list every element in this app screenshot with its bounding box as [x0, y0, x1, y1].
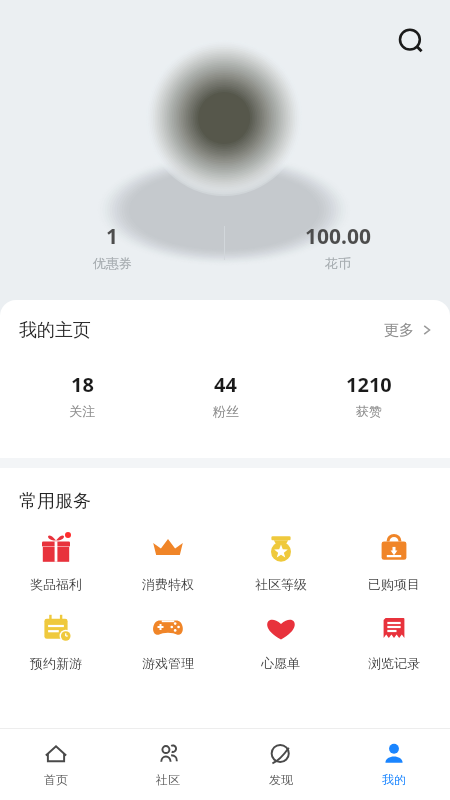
staticText: 社区等级: [255, 576, 307, 592]
button[interactable]: 预约新游: [0, 606, 112, 671]
staticText: 奖品福利: [30, 576, 82, 592]
staticText: 18: [71, 371, 94, 398]
staticText: 发现: [269, 772, 293, 787]
staticText: 首页: [44, 772, 68, 787]
staticText: 我的主页: [19, 319, 91, 342]
staticText: 浏览记录: [368, 655, 420, 671]
button[interactable]: 100.00: [225, 222, 450, 271]
staticText: 获赞: [356, 403, 382, 419]
staticText: 心愿单: [261, 655, 300, 671]
button[interactable]: 消费特权: [112, 527, 224, 592]
staticText: 粉丝: [213, 403, 239, 419]
staticText: 花币: [325, 255, 351, 271]
staticText: 常用服务: [19, 490, 91, 513]
staticText: 优惠券: [93, 255, 132, 271]
button[interactable]: 社区: [112, 728, 224, 800]
button[interactable]: 奖品福利: [0, 527, 112, 592]
button[interactable]: 44: [154, 360, 297, 430]
staticText: 1: [106, 222, 119, 251]
staticText: 预约新游: [30, 655, 82, 671]
staticText: 关注: [69, 403, 95, 419]
button[interactable]: 1: [0, 222, 224, 271]
button[interactable]: 浏览记录: [337, 606, 450, 671]
button[interactable]: 游戏管理: [112, 606, 224, 671]
staticText: 消费特权: [142, 576, 194, 592]
staticText: 我的: [382, 772, 406, 787]
button[interactable]: 发现: [224, 728, 337, 800]
button[interactable]: 心愿单: [224, 606, 337, 671]
button[interactable]: 1210: [297, 360, 440, 430]
staticText: 游戏管理: [142, 655, 194, 671]
button[interactable]: 我的主页: [0, 300, 450, 360]
staticText: 社区: [156, 772, 180, 787]
button[interactable]: 首页: [0, 728, 112, 800]
staticText: 已购项目: [368, 576, 420, 592]
staticText: 100.00: [305, 222, 371, 251]
button[interactable]: 社区等级: [224, 527, 337, 592]
button[interactable]: 18: [10, 360, 154, 430]
button[interactable]: Search: [388, 18, 436, 66]
staticText: 1210: [346, 371, 392, 398]
button[interactable]: 已购项目: [337, 527, 450, 592]
staticText: 更多: [384, 321, 414, 340]
staticText: 44: [214, 371, 237, 398]
button[interactable]: 我的: [337, 728, 450, 800]
